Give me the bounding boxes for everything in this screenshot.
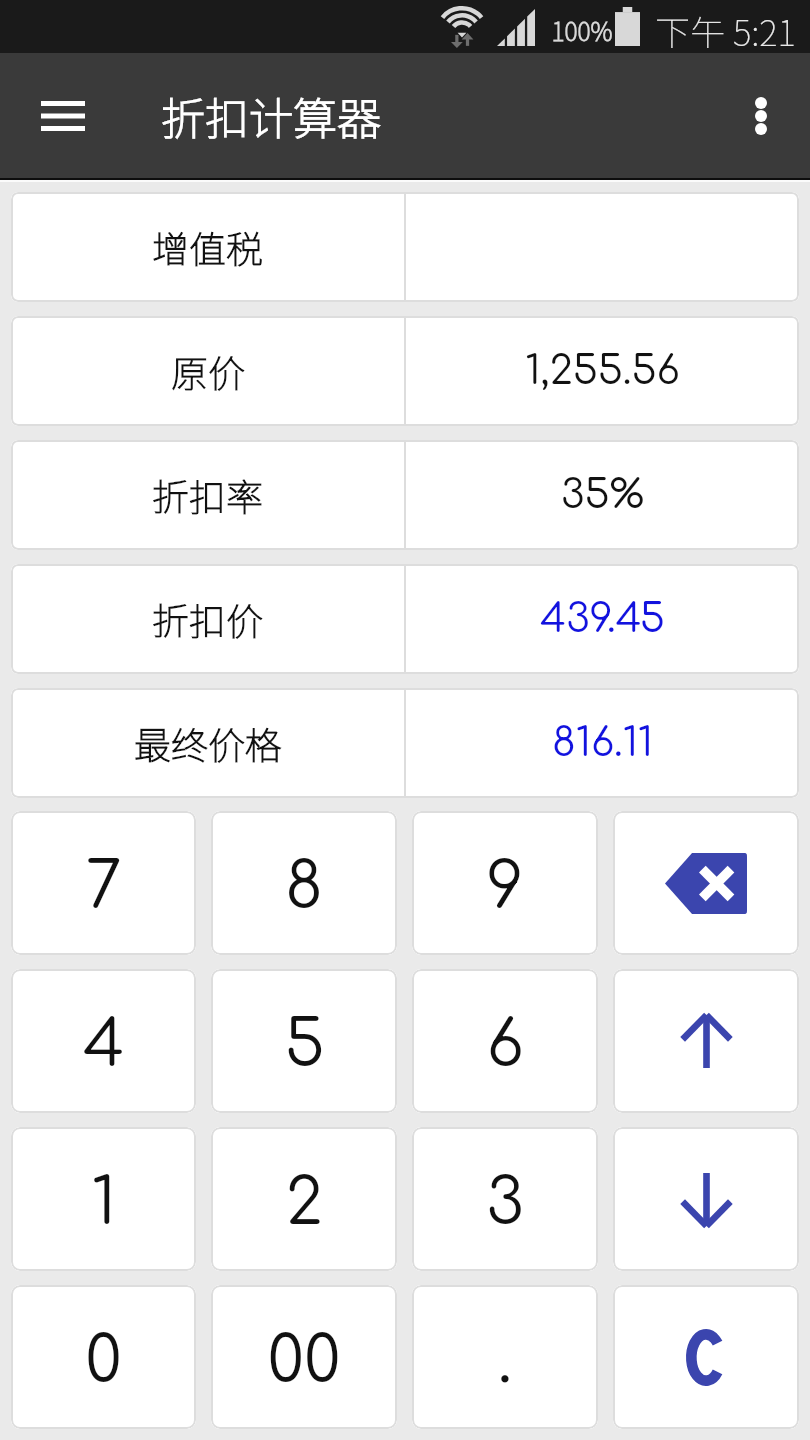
- button[interactable]: Decrement: [613, 1127, 799, 1271]
- staticText: 5: [284, 1010, 325, 1081]
- button[interactable]: 折扣率: [11, 440, 799, 550]
- button[interactable]: Backspace: [613, 811, 799, 955]
- staticText: 折扣计算器: [161, 84, 381, 148]
- staticText: 816.11: [552, 721, 653, 766]
- staticText: 4: [83, 1010, 125, 1081]
- button[interactable]: 7: [11, 811, 196, 955]
- button[interactable]: 增值税: [11, 192, 799, 302]
- staticText: 00: [267, 1326, 341, 1397]
- staticText: 7: [85, 852, 122, 923]
- other: Wi-Fi: [443, 5, 481, 48]
- staticText: 35%: [561, 473, 644, 518]
- other: Signal: [497, 9, 535, 46]
- staticText: 增值税: [152, 220, 263, 274]
- staticText: 439.45: [540, 597, 665, 642]
- other: Backspace: [665, 853, 747, 914]
- staticText: 下午 5:21: [655, 5, 796, 56]
- button[interactable]: Increment: [613, 969, 799, 1113]
- staticText: 6: [486, 1010, 524, 1081]
- staticText: 100%: [551, 12, 613, 48]
- staticText: 原价: [171, 344, 245, 398]
- staticText: 3: [486, 1168, 524, 1239]
- button[interactable]: 3: [412, 1127, 598, 1271]
- button[interactable]: 1: [11, 1127, 196, 1271]
- staticText: 9: [486, 852, 524, 923]
- staticText: 折扣率: [152, 468, 263, 522]
- staticText: 0: [85, 1326, 122, 1397]
- staticText: 1: [91, 1168, 116, 1239]
- button[interactable]: 最终价格: [11, 688, 799, 798]
- other: Clear: [686, 1329, 726, 1386]
- staticText: 折扣价: [152, 592, 263, 646]
- staticText: 2: [285, 1168, 323, 1239]
- other: Increment: [680, 1015, 733, 1068]
- button[interactable]: .: [412, 1285, 598, 1429]
- button[interactable]: 5: [211, 969, 397, 1113]
- button[interactable]: 9: [412, 811, 598, 955]
- staticText: 1,255.56: [525, 349, 680, 394]
- button[interactable]: 6: [412, 969, 598, 1113]
- other: Battery: [615, 7, 640, 46]
- button[interactable]: 4: [11, 969, 196, 1113]
- button[interactable]: Clear: [613, 1285, 799, 1429]
- other: Decrement: [680, 1173, 733, 1226]
- button[interactable]: 原价: [11, 316, 799, 426]
- button[interactable]: 00: [211, 1285, 397, 1429]
- button[interactable]: More options: [726, 81, 796, 151]
- button[interactable]: 折扣价: [11, 564, 799, 674]
- button[interactable]: 2: [211, 1127, 397, 1271]
- staticText: 最终价格: [134, 716, 282, 770]
- button[interactable]: Navigation menu: [20, 73, 106, 159]
- staticText: 8: [285, 852, 323, 923]
- button[interactable]: 0: [11, 1285, 196, 1429]
- button[interactable]: 8: [211, 811, 397, 955]
- staticText: .: [498, 1326, 512, 1397]
